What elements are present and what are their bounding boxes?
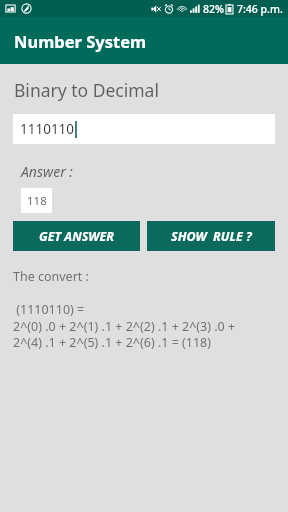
staticText: Answer : bbox=[21, 162, 73, 181]
staticText: SHOW RULE ? bbox=[171, 228, 252, 245]
staticText: (1110110) = 2^(0) .0 + 2^(1) .1 + 2^(2) … bbox=[13, 301, 236, 350]
staticText: 118 bbox=[27, 193, 47, 209]
button[interactable]: GET ANSWER bbox=[13, 221, 140, 251]
staticText: 1110110 bbox=[20, 120, 75, 138]
staticText: 82% bbox=[203, 2, 224, 16]
staticText: Binary to Decimal bbox=[14, 78, 159, 102]
staticText: 7:46 p.m. bbox=[237, 2, 283, 16]
button[interactable]: Binary input field bbox=[13, 114, 275, 144]
button[interactable]: SHOW RULE ? bbox=[147, 221, 275, 251]
staticText: The convert : bbox=[13, 268, 89, 285]
staticText: GET ANSWER bbox=[39, 228, 114, 245]
staticText: Number System bbox=[14, 30, 147, 52]
